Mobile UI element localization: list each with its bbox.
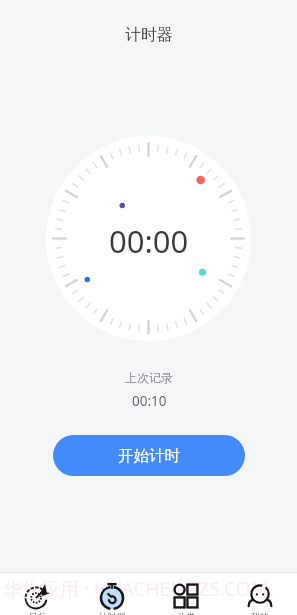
staticText: 计时器 (99, 611, 126, 615)
other: 计时器 (99, 583, 125, 609)
staticText: 开始计时 (118, 446, 180, 466)
staticText: 分类 (177, 611, 195, 615)
staticText: 华为应用 · HUACHENGZS.COM (3, 576, 268, 602)
button[interactable]: 分类 (149, 573, 223, 615)
button[interactable]: 计时器 (75, 573, 149, 615)
staticText: 上次记录 (125, 370, 173, 385)
staticText: 00:00 (109, 220, 189, 262)
staticText: 00:10 (132, 392, 167, 410)
other: 我的 (247, 583, 273, 609)
staticText: 目标 (29, 611, 47, 615)
button[interactable]: 目标 (0, 573, 75, 615)
button[interactable]: 开始计时 (53, 435, 245, 476)
button[interactable]: 我的 (223, 573, 297, 615)
other: 分类 (173, 583, 199, 609)
staticText: 计时器 (125, 25, 173, 45)
other: 目标 (25, 583, 51, 609)
staticText: 我的 (251, 611, 269, 615)
